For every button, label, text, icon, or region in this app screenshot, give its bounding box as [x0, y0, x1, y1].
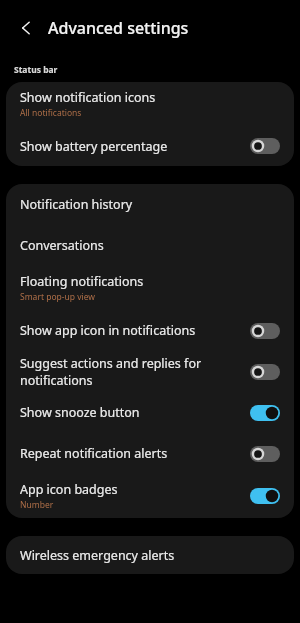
staticText: Status bar [14, 64, 58, 76]
button[interactable]: Floating notifications [6, 266, 294, 310]
button[interactable]: On [250, 405, 280, 421]
button[interactable]: Conversations [6, 225, 294, 266]
button[interactable]: Show notification icons [6, 82, 294, 126]
button[interactable]: Show snooze button [6, 392, 294, 433]
button[interactable]: Wireless emergency alerts [6, 536, 294, 574]
button[interactable]: Off [250, 364, 280, 380]
staticText: App icon badges [20, 481, 118, 498]
staticText: Repeat notification alerts [20, 445, 168, 462]
staticText: Show app icon in notifications [20, 322, 196, 339]
staticText: Floating notifications [20, 273, 144, 290]
button[interactable]: Notification history [6, 184, 294, 225]
staticText: Suggest actions and replies for notifica… [20, 355, 244, 389]
staticText: Show notification icons [20, 89, 156, 106]
staticText: All notifications [20, 107, 82, 119]
button[interactable]: Off [250, 138, 280, 154]
staticText: Number [20, 499, 54, 511]
staticText: Show snooze button [20, 404, 140, 421]
staticText: Advanced settings [48, 17, 189, 39]
staticText: Notification history [20, 196, 133, 213]
staticText: Wireless emergency alerts [20, 547, 175, 564]
button[interactable]: Repeat notification alerts [6, 433, 294, 474]
staticText: Conversations [20, 237, 104, 254]
staticText: Smart pop-up view [20, 291, 96, 303]
button[interactable]: Show app icon in notifications [6, 310, 294, 351]
button[interactable]: Show battery percentage [6, 126, 294, 166]
button[interactable]: Off [250, 446, 280, 462]
staticText: Show battery percentage [20, 138, 168, 155]
button[interactable]: App icon badges [6, 474, 294, 518]
button[interactable]: On [250, 488, 280, 504]
button[interactable]: Back [10, 11, 44, 45]
button[interactable]: Suggest actions and replies for notifica… [6, 351, 294, 392]
button[interactable]: Off [250, 323, 280, 339]
